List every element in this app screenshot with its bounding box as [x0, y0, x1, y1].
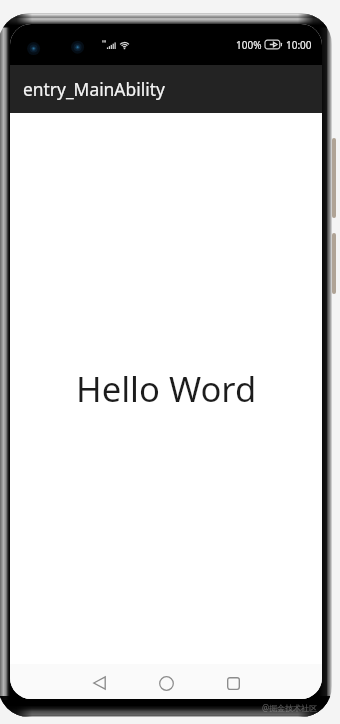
- button[interactable]: Back: [76, 668, 122, 698]
- staticText: entry_MainAbility: [23, 77, 165, 101]
- staticText: Hello Word: [76, 365, 257, 412]
- button[interactable]: Home: [143, 668, 189, 698]
- staticText: 100%: [236, 38, 262, 52]
- staticText: 10:00: [286, 38, 312, 52]
- button[interactable]: entry_MainAbility: [10, 65, 322, 113]
- staticText: @掘金技术社区: [262, 702, 318, 713]
- button[interactable]: Recent apps: [210, 668, 256, 698]
